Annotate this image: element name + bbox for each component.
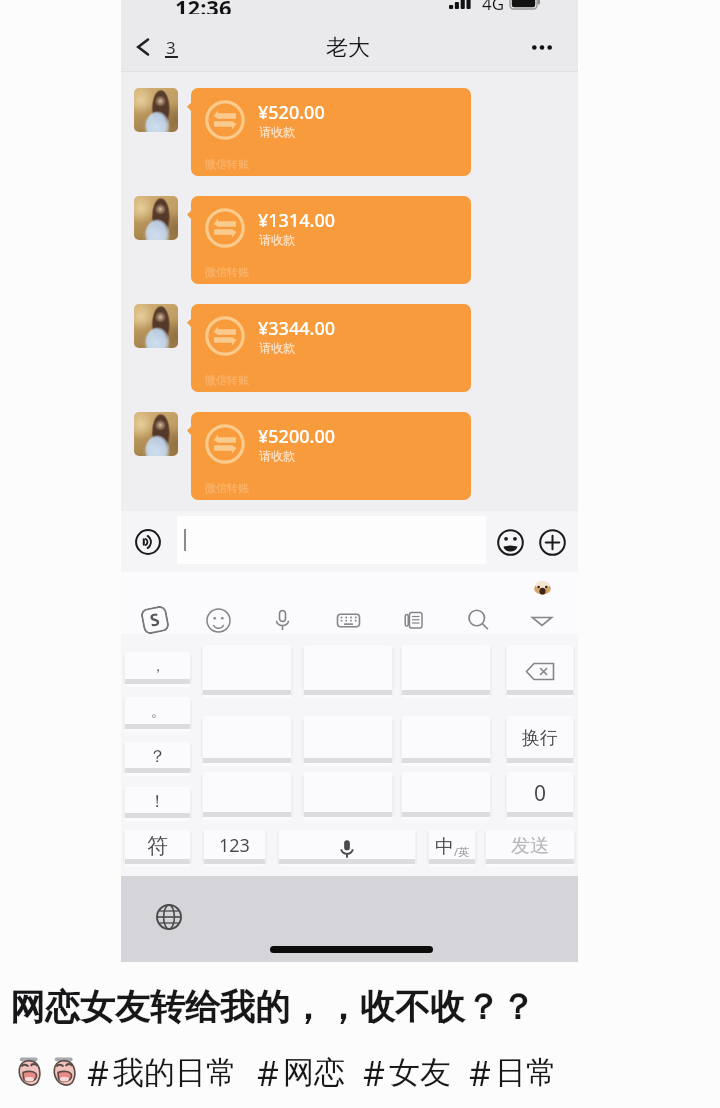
button[interactable]: Back — [137, 27, 179, 67]
button[interactable]: Switch language — [154, 902, 184, 932]
staticText: 换行 — [522, 727, 558, 750]
staticText: 日常 — [495, 1053, 557, 1092]
staticText: ¥1314.00 — [258, 208, 335, 233]
button[interactable]: Search — [461, 603, 495, 637]
button[interactable]: More options — [525, 30, 559, 64]
staticText: ¥3344.00 — [258, 316, 335, 341]
staticText: 网恋女友转给我的，，收不收？？ — [10, 985, 535, 1029]
staticText: 微信转账 — [205, 373, 249, 387]
button[interactable]: ， — [123, 652, 192, 687]
button[interactable]: ¥5200.00 — [191, 412, 471, 500]
staticText: # — [257, 1050, 279, 1096]
button[interactable]: 换行 — [505, 716, 575, 766]
button[interactable]: ¥1314.00 — [191, 196, 471, 284]
button[interactable] — [505, 645, 575, 698]
button[interactable]: Emoji — [496, 528, 524, 556]
staticText: ！ — [149, 791, 166, 812]
button[interactable]: Contact avatar — [134, 304, 178, 348]
button[interactable] — [400, 772, 492, 820]
button[interactable]: Sogou input — [138, 603, 172, 637]
staticText: # — [469, 1050, 491, 1096]
staticText: 老大 — [326, 34, 370, 62]
button[interactable]: Voice input — [134, 528, 162, 556]
staticText: ¥520.00 — [258, 100, 325, 125]
staticText: 请收款 — [259, 124, 295, 139]
staticText: 发送 — [511, 834, 549, 858]
staticText: /英 — [454, 844, 470, 859]
button[interactable]: Emoji panel — [201, 603, 235, 637]
button[interactable]: 符 — [123, 830, 192, 867]
button[interactable] — [277, 830, 417, 867]
button[interactable]: Hide keyboard — [525, 603, 559, 637]
button[interactable]: Contact avatar — [134, 196, 178, 240]
staticText: 3 — [166, 36, 176, 58]
button[interactable] — [201, 716, 293, 766]
staticText: 。 — [151, 703, 165, 721]
staticText: 微信转账 — [205, 481, 249, 495]
staticText: 123 — [219, 833, 250, 858]
staticText: 符 — [147, 833, 168, 859]
staticText: 中 — [435, 835, 454, 859]
staticText: ， — [151, 658, 165, 676]
staticText: # — [87, 1050, 109, 1096]
button[interactable]: ！ — [123, 787, 192, 821]
staticText: 网恋 — [283, 1053, 345, 1092]
staticText: 女友 — [389, 1053, 451, 1092]
button[interactable] — [400, 716, 492, 766]
button[interactable]: Contact avatar — [134, 88, 178, 132]
button[interactable] — [400, 645, 492, 698]
button[interactable] — [302, 716, 394, 766]
staticText: # — [363, 1050, 385, 1096]
button[interactable]: ？ — [123, 742, 192, 776]
button[interactable]: ¥3344.00 — [191, 304, 471, 392]
button[interactable] — [177, 516, 486, 564]
button[interactable]: 0 — [505, 772, 575, 820]
staticText: 请收款 — [259, 448, 295, 463]
button[interactable]: Clipboard — [396, 603, 430, 637]
button[interactable]: 中 — [427, 830, 477, 867]
button[interactable]: More functions — [538, 528, 566, 556]
button[interactable]: Voice — [265, 603, 299, 637]
button[interactable]: 。 — [123, 697, 192, 732]
button[interactable] — [201, 772, 293, 820]
staticText: S — [148, 607, 162, 632]
staticText: 我的日常 — [113, 1053, 237, 1092]
staticText: ¥5200.00 — [258, 424, 335, 449]
button[interactable] — [302, 772, 394, 820]
button[interactable]: Contact avatar — [134, 412, 178, 456]
button[interactable]: ¥520.00 — [191, 88, 471, 176]
staticText: 请收款 — [259, 340, 295, 355]
staticText: 4G — [482, 0, 505, 14]
button[interactable] — [302, 645, 394, 698]
staticText: 0 — [534, 779, 547, 808]
button[interactable]: 123 — [202, 830, 267, 867]
staticText: 微信转账 — [205, 157, 249, 171]
staticText: ？ — [149, 746, 166, 767]
button[interactable] — [201, 645, 293, 698]
button[interactable]: 发送 — [484, 830, 576, 867]
staticText: 请收款 — [259, 232, 295, 247]
button[interactable]: Keyboard layout — [331, 603, 365, 637]
staticText: 微信转账 — [205, 265, 249, 279]
staticText: 12:36 — [175, 0, 232, 14]
